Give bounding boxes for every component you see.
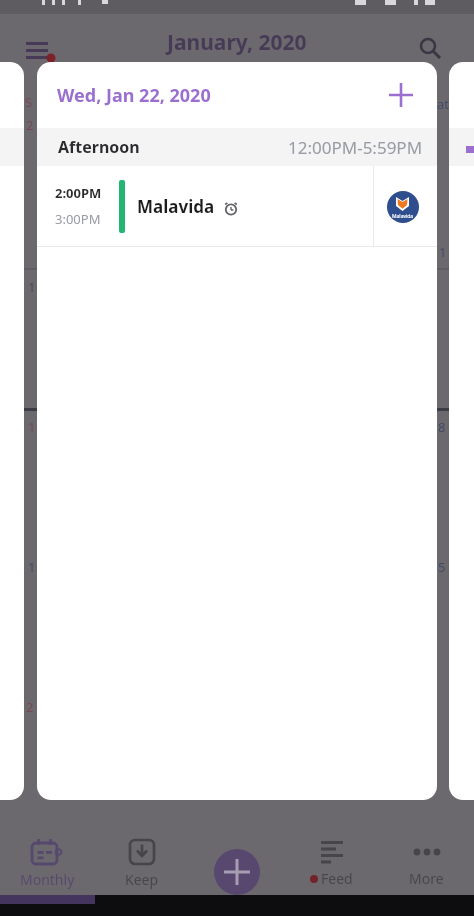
staticText: More xyxy=(409,869,444,888)
staticText: Malavida xyxy=(137,195,215,218)
staticText: at xyxy=(437,95,449,113)
button[interactable]: Feed xyxy=(284,833,379,895)
staticText: 1 xyxy=(28,558,36,576)
staticText: 12:00PM-5:59PM xyxy=(288,136,423,159)
button[interactable] xyxy=(189,833,284,895)
button[interactable] xyxy=(416,34,446,62)
staticText: 2 xyxy=(26,698,34,716)
staticText: January, 2020 xyxy=(167,28,307,57)
button[interactable]: 2:00PM xyxy=(37,166,437,246)
staticText: Afternoon xyxy=(58,136,140,158)
staticText: Feed xyxy=(321,869,353,888)
staticText: 2:00PM xyxy=(55,184,102,202)
staticText: Monthly xyxy=(20,870,75,889)
staticText: 3:00PM xyxy=(55,210,101,228)
staticText: 5 xyxy=(438,558,446,576)
button[interactable] xyxy=(24,40,50,62)
button[interactable]: Monthly xyxy=(0,833,94,895)
staticText: 1 xyxy=(439,243,447,261)
button[interactable]: More xyxy=(379,833,474,895)
staticText: Wed, Jan 22, 2020 xyxy=(57,83,211,108)
staticText: Malavida xyxy=(392,213,414,220)
staticText: Keep xyxy=(125,870,159,889)
button[interactable] xyxy=(387,81,415,109)
button[interactable]: Keep xyxy=(94,833,189,895)
staticText: 8 xyxy=(438,418,446,436)
staticText: 1 xyxy=(28,278,36,296)
staticText: S xyxy=(25,93,33,111)
staticText: 1 xyxy=(28,418,36,436)
staticText: 2 xyxy=(26,116,34,134)
